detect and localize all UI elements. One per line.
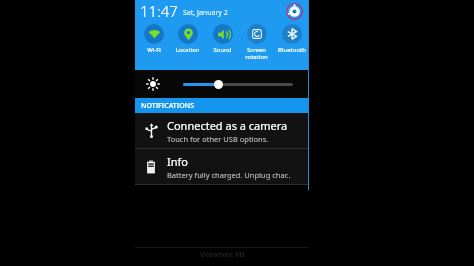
button[interactable]: Sound bbox=[206, 22, 239, 54]
button[interactable]: Brightness bbox=[135, 70, 309, 98]
staticText: Bluetooth bbox=[278, 46, 306, 54]
staticText: Location bbox=[175, 46, 200, 54]
staticText: Connected as a camera bbox=[167, 118, 288, 133]
staticText: Wi-Fi bbox=[147, 46, 161, 54]
button[interactable]: Wi-Fi bbox=[137, 22, 170, 54]
button[interactable]: Bluetooth bbox=[275, 22, 308, 54]
staticText: NOTIFICATIONS bbox=[141, 101, 195, 111]
staticText: 11:47 bbox=[140, 1, 178, 21]
staticText: Battery fully charged. Unplug char.. bbox=[167, 170, 291, 180]
button[interactable]: Info bbox=[135, 149, 309, 184]
button[interactable]: Connected as a camera bbox=[135, 113, 309, 148]
button[interactable]: Location bbox=[171, 22, 204, 54]
staticText: Vodafone MI bbox=[200, 250, 245, 260]
button[interactable]: Screen rotation bbox=[240, 22, 273, 61]
staticText: Screen rotation bbox=[245, 46, 268, 61]
staticText: Sat, January 2 bbox=[183, 8, 228, 18]
staticText: Touch for other USB options. bbox=[167, 134, 269, 144]
button[interactable]: Settings bbox=[286, 3, 303, 20]
staticText: Info bbox=[167, 154, 188, 169]
staticText: Sound bbox=[213, 46, 232, 54]
